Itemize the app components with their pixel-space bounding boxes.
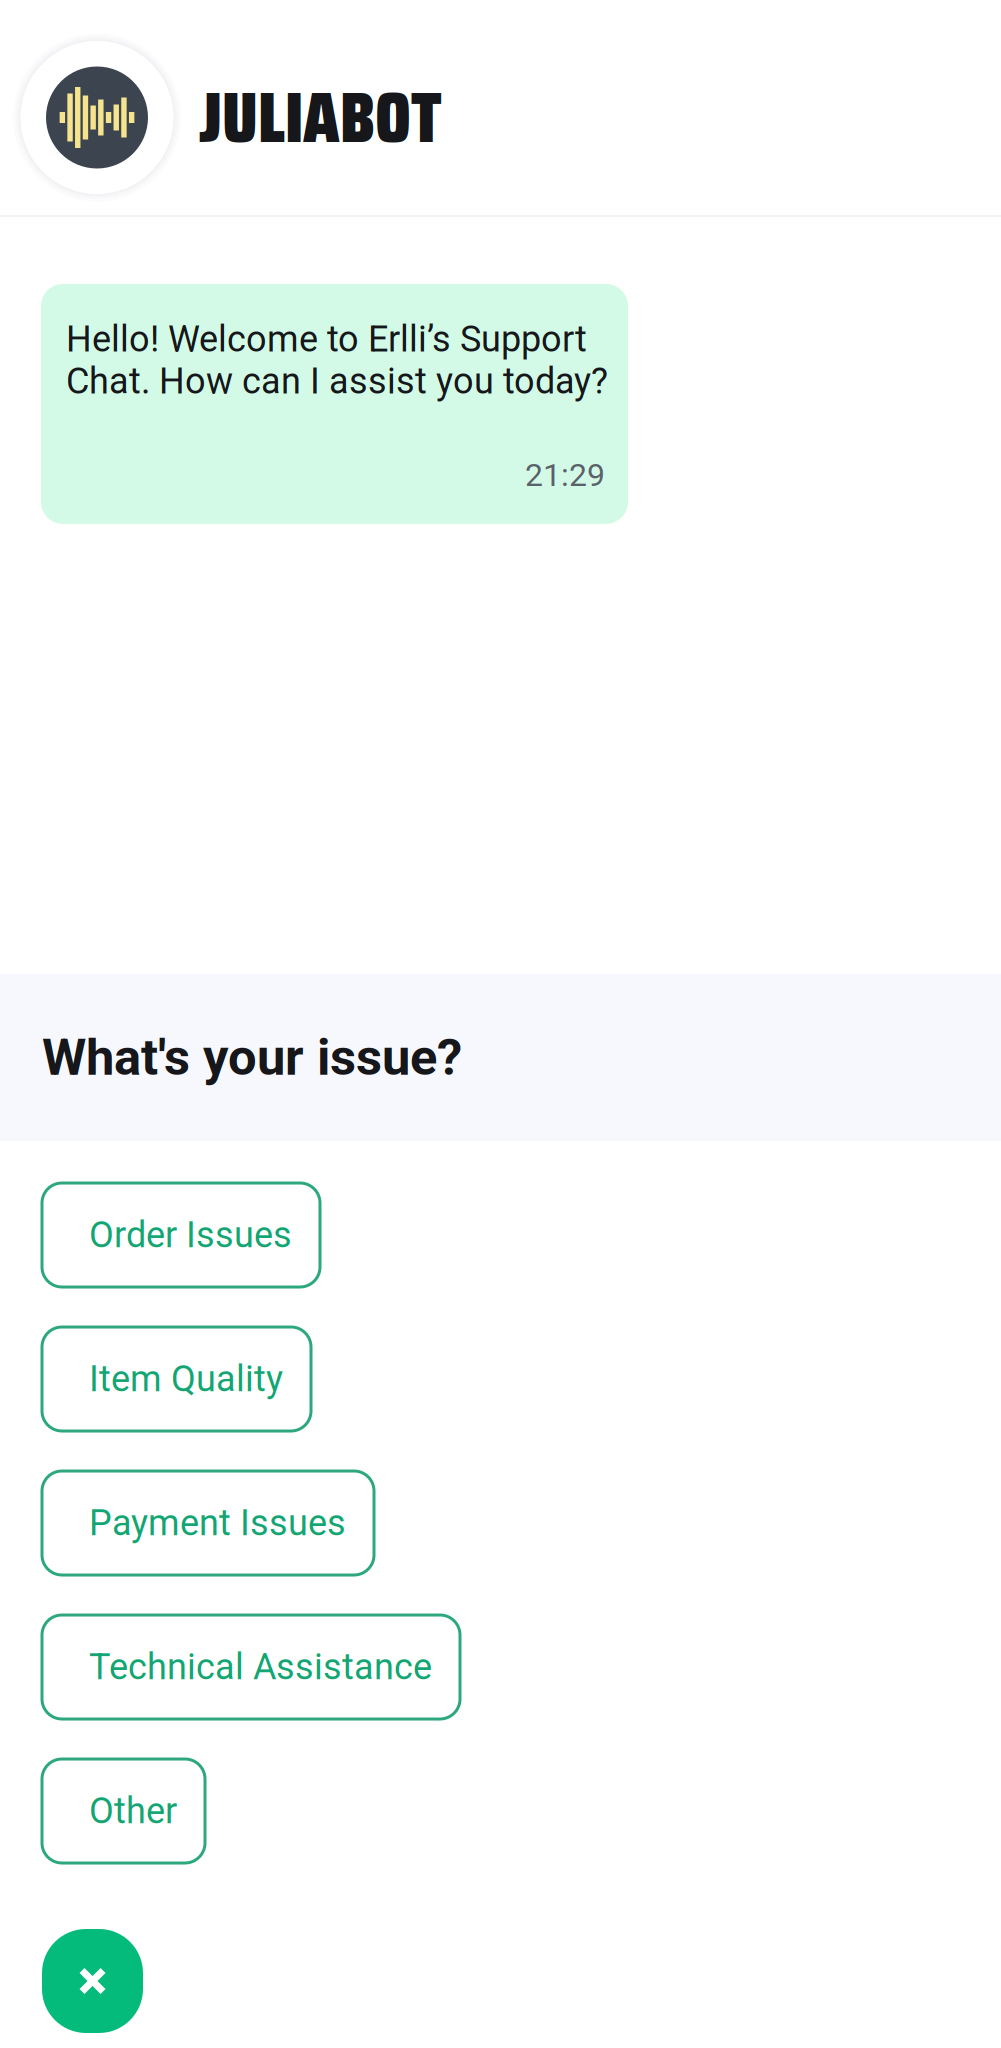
button[interactable]: Payment Issues [42, 1471, 374, 1575]
staticText: Technical Assistance [89, 1646, 432, 1688]
button[interactable]: Order Issues [42, 1183, 320, 1287]
staticText: What's your issue? [42, 1028, 462, 1087]
staticText: Item Quality [89, 1358, 283, 1400]
staticText: Hello! Welcome to Erlli’s Support Chat. … [66, 318, 608, 402]
button[interactable]: Close chat [42, 1929, 143, 2033]
staticText: 21:29 [525, 456, 605, 494]
staticText: Order Issues [89, 1214, 292, 1256]
button[interactable]: Item Quality [42, 1327, 311, 1431]
staticText: Payment Issues [89, 1502, 346, 1544]
button[interactable]: Other [42, 1759, 205, 1863]
staticText: JULIABOT [199, 62, 442, 173]
button[interactable]: Technical Assistance [42, 1615, 460, 1719]
staticText: Other [89, 1790, 177, 1832]
